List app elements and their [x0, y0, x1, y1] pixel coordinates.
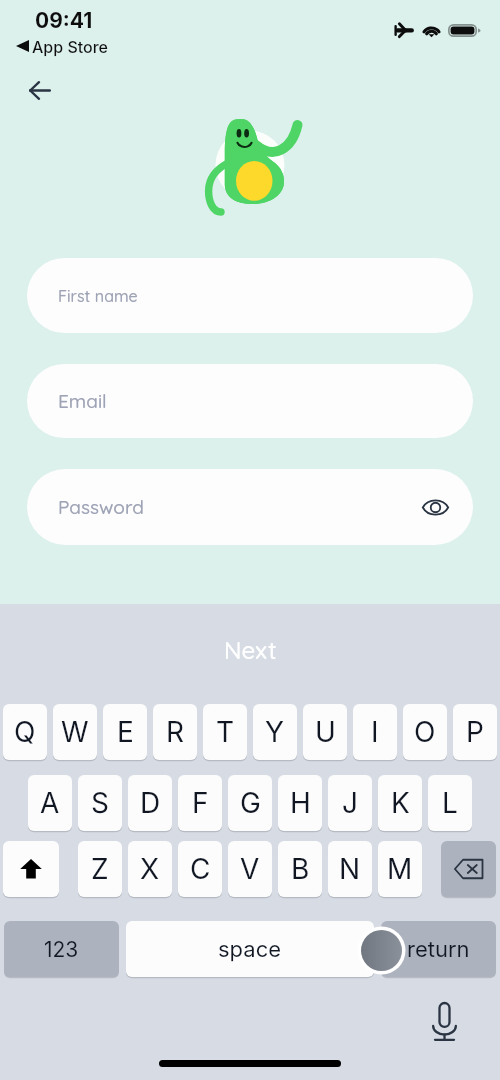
button[interactable]: Q — [3, 704, 47, 760]
staticText: L — [442, 786, 458, 820]
staticText: Email — [58, 389, 107, 413]
staticText: X — [140, 852, 160, 886]
button[interactable]: L — [428, 775, 472, 831]
button[interactable]: Email — [27, 364, 473, 438]
button[interactable]: B — [278, 841, 322, 897]
staticText: App Store — [32, 37, 108, 56]
button[interactable]: Dictate — [424, 998, 464, 1046]
button[interactable]: W — [53, 704, 97, 760]
button[interactable]: G — [228, 775, 272, 831]
button[interactable]: M — [378, 841, 422, 897]
staticText: K — [391, 786, 410, 820]
button[interactable]: R — [153, 704, 197, 760]
staticText: I — [371, 715, 379, 749]
staticText: First name — [58, 286, 138, 306]
button[interactable]: O — [403, 704, 447, 760]
button[interactable]: U — [303, 704, 347, 760]
staticText: C — [190, 852, 211, 886]
staticText: S — [91, 786, 109, 820]
button[interactable]: Next — [0, 604, 500, 696]
button[interactable]: I — [353, 704, 397, 760]
button[interactable]: Z — [78, 841, 122, 897]
staticText: Password — [58, 495, 144, 519]
staticText: V — [240, 852, 260, 886]
staticText: Y — [265, 715, 285, 749]
button[interactable]: J — [328, 775, 372, 831]
button[interactable]: Password — [27, 469, 473, 545]
staticText: W — [61, 715, 89, 749]
button[interactable]: Back — [18, 68, 62, 112]
staticText: M — [387, 852, 413, 886]
staticText: P — [466, 715, 484, 749]
button[interactable]: A — [28, 775, 72, 831]
button[interactable]: P — [453, 704, 497, 760]
staticText: R — [166, 715, 185, 749]
button[interactable]: First name — [27, 258, 473, 333]
button[interactable]: Shift — [3, 841, 59, 897]
staticText: 09:41 — [35, 8, 93, 33]
staticText: U — [315, 715, 336, 749]
staticText: space — [218, 936, 282, 963]
button[interactable]: return — [381, 921, 496, 977]
button[interactable]: H — [278, 775, 322, 831]
staticText: O — [414, 715, 436, 749]
staticText: A — [40, 786, 60, 820]
button[interactable]: V — [228, 841, 272, 897]
staticText: N — [339, 852, 361, 886]
button[interactable]: N — [328, 841, 372, 897]
staticText: H — [290, 786, 311, 820]
staticText: D — [140, 786, 161, 820]
button[interactable]: E — [103, 704, 147, 760]
staticText: B — [291, 852, 310, 886]
button[interactable]: 123 — [4, 921, 119, 977]
button[interactable]: F — [178, 775, 222, 831]
staticText: F — [192, 786, 209, 820]
button[interactable]: X — [128, 841, 172, 897]
button[interactable]: space — [126, 921, 374, 977]
button[interactable]: Show password — [419, 491, 451, 523]
staticText: Z — [91, 852, 109, 886]
button[interactable]: Y — [253, 704, 297, 760]
button[interactable]: C — [178, 841, 222, 897]
button[interactable]: K — [378, 775, 422, 831]
staticText: G — [240, 786, 261, 820]
staticText: return — [407, 936, 470, 963]
button[interactable]: S — [78, 775, 122, 831]
staticText: E — [117, 715, 134, 749]
staticText: Q — [14, 715, 36, 749]
button[interactable]: Delete — [441, 841, 496, 897]
staticText: Next — [224, 635, 277, 665]
staticText: 123 — [44, 937, 79, 962]
button[interactable]: D — [128, 775, 172, 831]
button[interactable]: T — [203, 704, 247, 760]
staticText: J — [342, 786, 358, 820]
staticText: T — [216, 715, 235, 749]
